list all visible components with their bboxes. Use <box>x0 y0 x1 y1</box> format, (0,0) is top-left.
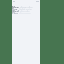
staticText: Thu <box>12 12 18 14</box>
button[interactable]: Mon <box>12 6 40 8</box>
staticText: light rain <box>19 8 32 10</box>
staticText: Wed <box>12 10 19 12</box>
staticText: Tue <box>12 8 18 10</box>
button[interactable]: Thu <box>12 12 40 14</box>
staticText: showers <box>19 12 31 14</box>
staticText: cloudy <box>20 10 30 12</box>
staticText: clear sky <box>20 6 33 8</box>
button[interactable]: Tue <box>12 8 40 10</box>
staticText: Mon <box>12 6 19 8</box>
button[interactable]: Wed <box>12 10 40 12</box>
